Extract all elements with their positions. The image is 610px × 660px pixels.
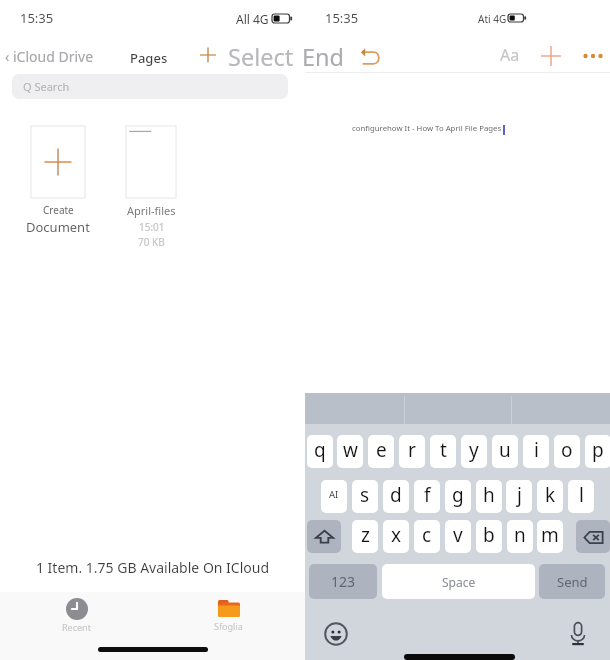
- button[interactable]: Undo: [356, 42, 384, 70]
- staticText: 15:35: [325, 9, 359, 27]
- staticText: Select: [228, 41, 294, 67]
- staticText: p: [592, 437, 604, 463]
- button[interactable]: r: [399, 435, 425, 468]
- button[interactable]: Create document: [31, 126, 85, 198]
- button[interactable]: z: [352, 520, 378, 553]
- staticText: d: [390, 482, 402, 508]
- button[interactable]: q: [307, 435, 333, 468]
- staticText: Aa: [500, 44, 520, 66]
- staticText: All 4G: [236, 11, 269, 27]
- button[interactable]: Send: [539, 564, 605, 599]
- staticText: Document: [26, 218, 90, 236]
- staticText: Pages: [130, 49, 168, 67]
- button[interactable]: s: [352, 480, 378, 513]
- button[interactable]: p: [585, 435, 610, 468]
- staticText: t: [440, 437, 447, 463]
- button[interactable]: Emoji: [324, 622, 348, 646]
- staticText: Space: [442, 574, 476, 590]
- staticText: 1 Item. 1.75 GB Available On ICloud: [0, 558, 305, 577]
- staticText: j: [517, 482, 522, 508]
- button[interactable]: l: [568, 480, 594, 513]
- button[interactable]: y: [461, 435, 487, 468]
- button[interactable]: Text format: [495, 42, 525, 68]
- staticText: configurehow It - How To April File Page…: [352, 123, 502, 134]
- button[interactable]: u: [492, 435, 518, 468]
- button[interactable]: o: [554, 435, 580, 468]
- staticText: k: [545, 482, 556, 508]
- button[interactable]: 123: [309, 564, 377, 599]
- button[interactable]: b: [476, 520, 502, 553]
- button[interactable]: April-files: [126, 126, 176, 198]
- staticText: b: [483, 522, 495, 548]
- staticText: x: [391, 522, 402, 548]
- staticText: 15:01: [139, 220, 165, 234]
- button[interactable]: Q Search: [12, 74, 288, 99]
- button[interactable]: w: [337, 435, 363, 468]
- button[interactable]: Space: [382, 564, 535, 599]
- staticText: w: [343, 437, 358, 463]
- button[interactable]: m: [537, 520, 563, 553]
- staticText: q: [314, 437, 326, 463]
- button[interactable]: ‹ iCloud Drive: [2, 45, 97, 67]
- button[interactable]: End: [299, 42, 347, 68]
- staticText: o: [561, 437, 573, 463]
- staticText: 123: [331, 572, 356, 591]
- button[interactable]: g: [445, 480, 471, 513]
- staticText: ‹ iCloud Drive: [5, 47, 94, 66]
- button[interactable]: c: [414, 520, 440, 553]
- button[interactable]: Insert: [538, 43, 564, 69]
- staticText: f: [424, 482, 431, 508]
- staticText: Create: [43, 203, 74, 217]
- staticText: 15:35: [20, 9, 54, 27]
- staticText: Sfoglia: [214, 620, 243, 632]
- button[interactable]: h: [476, 480, 502, 513]
- button[interactable]: e: [368, 435, 394, 468]
- staticText: AI: [329, 488, 339, 501]
- staticText: n: [514, 522, 526, 548]
- button[interactable]: j: [506, 480, 532, 513]
- button[interactable]: AI: [321, 480, 347, 513]
- button[interactable]: i: [523, 435, 549, 468]
- button[interactable]: t: [430, 435, 456, 468]
- button[interactable]: Backspace: [576, 520, 610, 553]
- button[interactable]: Recent: [48, 594, 104, 636]
- staticText: Ati 4G: [478, 12, 507, 26]
- button[interactable]: Shift: [307, 520, 341, 553]
- staticText: g: [452, 482, 464, 508]
- staticText: s: [360, 482, 370, 508]
- staticText: l: [579, 482, 584, 508]
- button[interactable]: Dictation: [569, 622, 587, 645]
- staticText: y: [469, 437, 479, 463]
- staticText: Recent: [62, 621, 91, 633]
- staticText: m: [541, 522, 559, 548]
- button[interactable]: x: [383, 520, 409, 553]
- staticText: u: [499, 437, 511, 463]
- button[interactable]: d: [383, 480, 409, 513]
- button[interactable]: Create: [18, 203, 98, 237]
- staticText: v: [453, 522, 463, 548]
- button[interactable]: f: [414, 480, 440, 513]
- button[interactable]: v: [445, 520, 471, 553]
- staticText: e: [376, 437, 387, 463]
- button[interactable]: More options: [580, 43, 606, 69]
- button[interactable]: April-files: [111, 203, 191, 249]
- staticText: Send: [557, 573, 588, 591]
- staticText: April-files: [127, 203, 176, 218]
- staticText: i: [534, 437, 539, 463]
- staticText: r: [408, 437, 416, 463]
- staticText: Q Search: [23, 79, 70, 94]
- button[interactable]: Select: [226, 42, 296, 68]
- staticText: End: [302, 41, 345, 67]
- staticText: h: [483, 482, 495, 508]
- button[interactable]: k: [537, 480, 563, 513]
- button[interactable]: n: [507, 520, 533, 553]
- button[interactable]: New document: [195, 42, 221, 68]
- staticText: c: [422, 522, 432, 548]
- button[interactable]: Sfoglia: [200, 594, 256, 636]
- staticText: z: [361, 522, 370, 548]
- staticText: 70 KB: [138, 235, 165, 249]
